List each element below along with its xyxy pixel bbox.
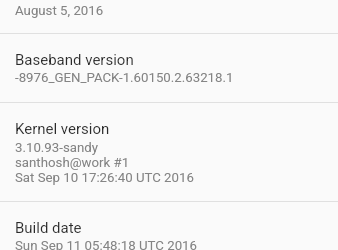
staticText: August 5, 2016 <box>15 3 104 19</box>
button[interactable]: Baseband version <box>0 34 338 102</box>
staticText: Baseband version <box>15 51 134 69</box>
button[interactable]: August 5, 2016 <box>0 0 338 33</box>
staticText: Kernel version <box>15 120 110 138</box>
staticText: Sun Sep 11 05:48:18 UTC 2016 <box>15 238 197 250</box>
button[interactable]: Build date <box>0 202 338 250</box>
staticText: Build date <box>15 219 82 237</box>
staticText: 3.10.93-sandy santhosh@work #1 Sat Sep 1… <box>15 140 194 185</box>
button[interactable]: Kernel version <box>0 103 338 201</box>
staticText: -8976_GEN_PACK-1.60150.2.63218.1 <box>15 70 234 86</box>
